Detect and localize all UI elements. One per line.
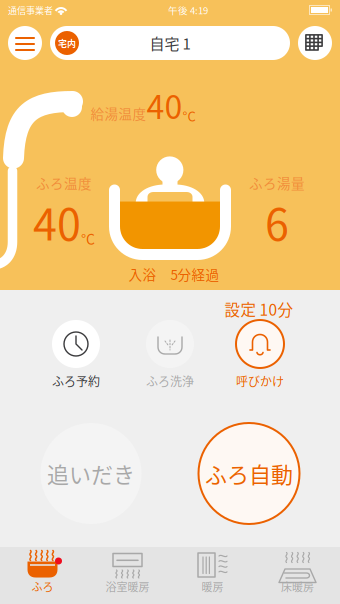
staticText: 午後 4:19: [168, 3, 208, 17]
staticText: 宅内: [58, 36, 76, 49]
button[interactable]: 追いだき: [40, 423, 141, 524]
staticText: 浴室暖房: [105, 578, 149, 594]
staticText: ふろ: [31, 578, 53, 594]
button[interactable]: 浴室暖房: [85, 547, 170, 604]
staticText: 40: [33, 191, 81, 253]
staticText: 呼びかけ: [236, 372, 284, 390]
staticText: 自宅 1: [149, 32, 190, 54]
button[interactable]: 暖房: [170, 547, 255, 604]
button[interactable]: ふろ: [0, 547, 85, 604]
staticText: °C: [81, 229, 95, 249]
staticText: ふろ湯量: [249, 173, 305, 193]
staticText: 入浴 5分経過: [128, 264, 219, 284]
button[interactable]: ふろ自動: [198, 423, 299, 524]
staticText: 給湯温度: [90, 104, 146, 123]
staticText: 追いだき: [47, 458, 135, 489]
button[interactable]: 設定 10分: [222, 290, 308, 400]
button[interactable]: カレンダー: [298, 26, 332, 60]
staticText: ふろ予約: [52, 372, 100, 390]
button[interactable]: メニュー: [8, 26, 42, 60]
staticText: 設定 10分: [224, 298, 293, 320]
staticText: 40: [146, 82, 182, 128]
button[interactable]: ふろ洗浄: [132, 290, 208, 400]
staticText: 6: [265, 191, 289, 253]
button[interactable]: ふろ予約: [38, 290, 114, 400]
staticText: °C: [182, 106, 195, 125]
button[interactable]: 床暖房: [255, 547, 340, 604]
staticText: 暖房: [201, 578, 223, 594]
staticText: 床暖房: [281, 578, 314, 594]
staticText: ふろ自動: [205, 458, 293, 489]
staticText: ふろ温度: [36, 173, 92, 193]
button[interactable]: 宅内: [50, 26, 290, 60]
staticText: ふろ洗浄: [146, 372, 194, 390]
staticText: 通信事業者: [8, 3, 53, 16]
